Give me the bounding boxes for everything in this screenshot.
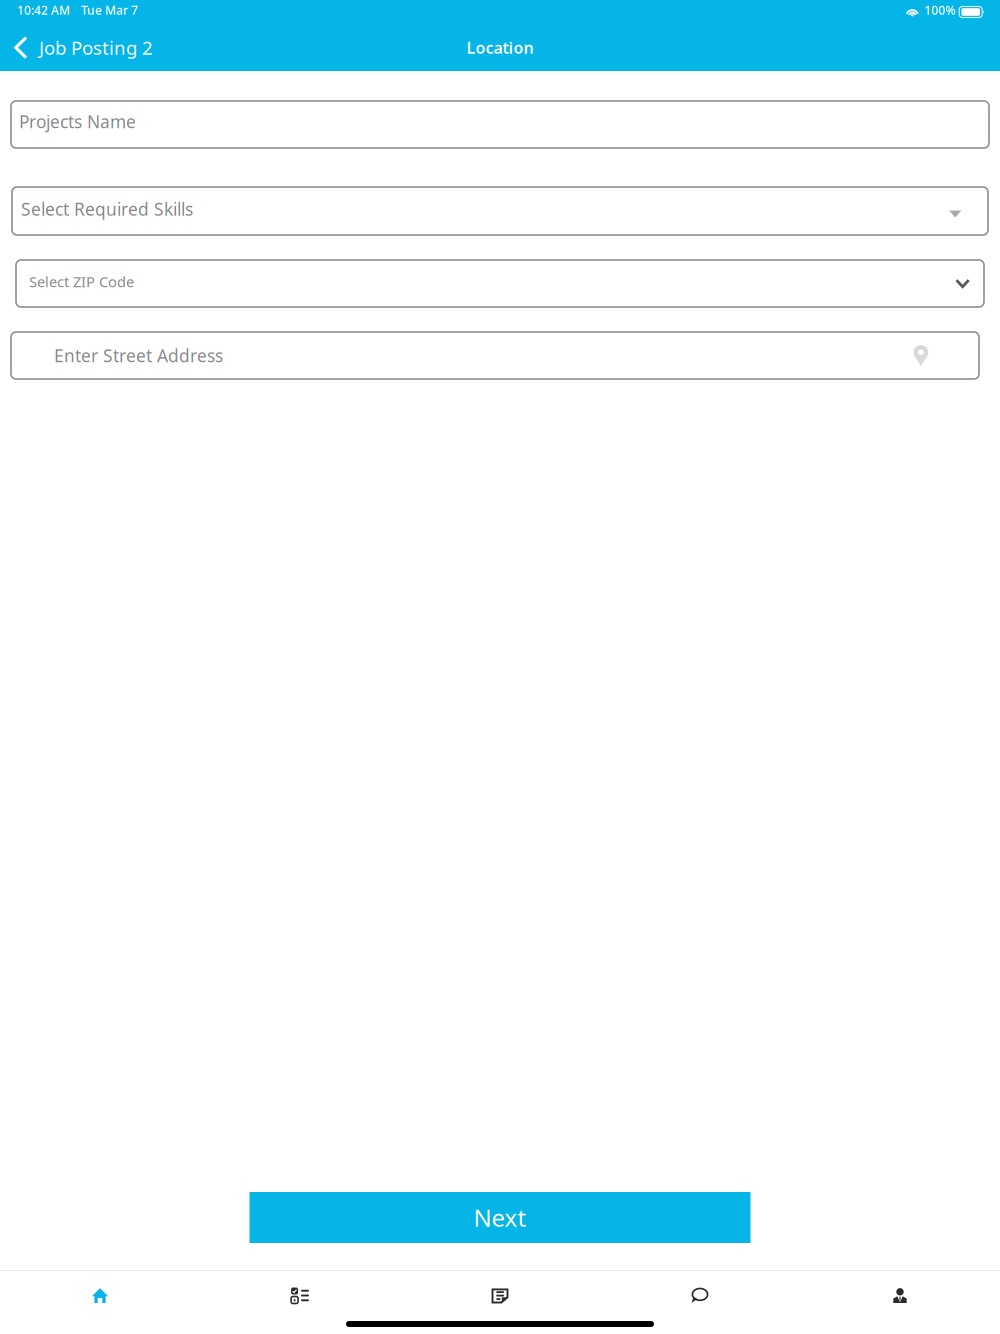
button[interactable]: Tasks [200, 1270, 400, 1321]
staticText: Select ZIP Code [29, 272, 134, 291]
staticText: Job Posting 2 [39, 35, 153, 60]
button[interactable]: Profile [800, 1270, 1000, 1321]
staticText: Select Required Skills [21, 197, 193, 220]
staticText: 100% [924, 2, 955, 18]
staticText: 10:42 AM [17, 2, 70, 18]
staticText: Enter Street Address [54, 344, 223, 367]
button[interactable]: Job Posting 2 [0, 28, 167, 67]
staticText: Projects Name [19, 110, 136, 133]
staticText: Next [473, 1202, 526, 1233]
button[interactable]: Home [0, 1270, 200, 1321]
staticText: Location [466, 37, 533, 58]
staticText: Tue Mar 7 [81, 2, 138, 18]
button[interactable]: Next [249, 1192, 750, 1243]
button[interactable]: Jobs [400, 1270, 600, 1321]
button[interactable]: Messages [600, 1270, 800, 1321]
